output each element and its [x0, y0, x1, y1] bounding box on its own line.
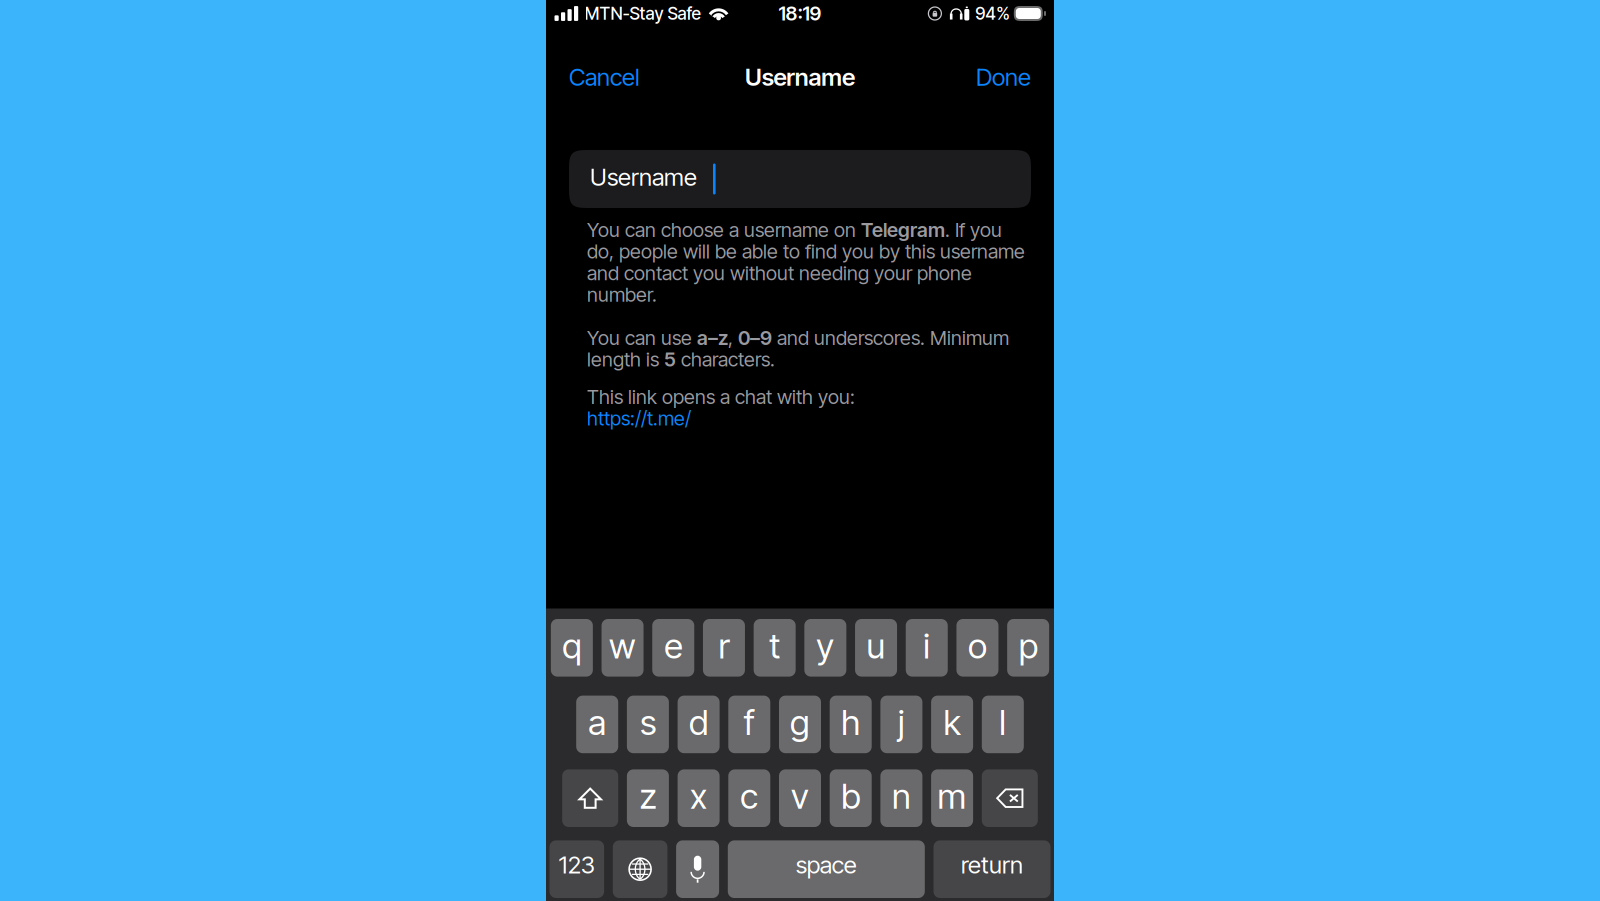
staticText: MTN-Stay Safe: [585, 3, 701, 24]
button[interactable]: https://t.me/: [587, 407, 1037, 429]
staticText: length is 5 characters.: [587, 348, 775, 371]
staticText: and contact you without needing your pho…: [587, 261, 972, 285]
button[interactable]: Cancel: [561, 50, 648, 103]
button[interactable]: z: [627, 769, 669, 827]
staticText: z: [639, 775, 656, 817]
button[interactable]: k: [931, 696, 973, 753]
button[interactable]: g: [779, 696, 821, 753]
staticText: l: [999, 701, 1006, 743]
button[interactable]: c: [728, 769, 770, 827]
button[interactable]: Done: [968, 50, 1039, 103]
button[interactable]: q: [551, 619, 593, 677]
staticText: You can use a–z, 0–9 and underscores. Mi…: [587, 326, 1009, 349]
staticText: f: [744, 701, 755, 743]
staticText: o: [968, 625, 987, 667]
button[interactable]: e: [652, 619, 694, 677]
staticText: k: [944, 701, 961, 743]
button[interactable]: v: [779, 769, 821, 827]
staticText: n: [892, 775, 911, 817]
button[interactable]: Next keyboard: [613, 840, 667, 898]
staticText: This link opens a chat with you:: [587, 385, 855, 409]
button[interactable]: h: [830, 696, 872, 753]
button[interactable]: space: [728, 840, 925, 898]
staticText: r: [718, 625, 729, 667]
button[interactable]: x: [678, 769, 720, 827]
staticText: c: [740, 775, 758, 817]
button[interactable]: t: [754, 619, 796, 677]
staticText: p: [1019, 625, 1038, 667]
staticText: d: [689, 701, 708, 743]
staticText: x: [690, 775, 707, 817]
staticText: q: [562, 625, 581, 667]
button[interactable]: Numbers: [549, 840, 604, 898]
staticText: b: [841, 775, 860, 817]
button[interactable]: Username: [569, 150, 1031, 208]
button[interactable]: u: [855, 619, 897, 677]
button[interactable]: s: [627, 696, 669, 753]
staticText: y: [816, 625, 834, 667]
staticText: Username: [590, 162, 697, 191]
staticText: g: [790, 701, 810, 743]
button[interactable]: m: [931, 769, 973, 827]
staticText: m: [938, 775, 967, 817]
button[interactable]: return: [933, 840, 1050, 898]
button[interactable]: j: [880, 696, 922, 753]
button[interactable]: r: [703, 619, 745, 677]
button[interactable]: w: [602, 619, 644, 677]
button[interactable]: b: [830, 769, 872, 827]
button[interactable]: l: [982, 696, 1024, 753]
staticText: 18:19: [778, 2, 821, 25]
staticText: Cancel: [569, 62, 640, 91]
staticText: s: [640, 701, 656, 743]
staticText: Username: [745, 62, 855, 91]
button[interactable]: i: [906, 619, 948, 677]
staticText: u: [866, 625, 885, 667]
button[interactable]: o: [956, 619, 998, 677]
button[interactable]: y: [804, 619, 846, 677]
staticText: space: [796, 850, 857, 879]
button[interactable]: d: [678, 696, 720, 753]
staticText: t: [769, 625, 780, 667]
button[interactable]: f: [728, 696, 770, 753]
staticText: You can choose a username on Telegram. I…: [587, 218, 1002, 241]
staticText: h: [841, 701, 860, 743]
staticText: 94%: [975, 3, 1010, 24]
staticText: 123: [559, 850, 595, 879]
button[interactable]: Delete: [982, 769, 1038, 827]
staticText: j: [898, 701, 905, 743]
button[interactable]: Shift: [562, 769, 618, 827]
button[interactable]: p: [1007, 619, 1049, 677]
staticText: number.: [587, 283, 657, 307]
staticText: i: [923, 625, 930, 667]
button[interactable]: n: [880, 769, 922, 827]
staticText: return: [961, 850, 1023, 879]
staticText: w: [609, 625, 636, 667]
staticText: v: [791, 775, 809, 817]
staticText: https://t.me/: [587, 406, 691, 430]
button[interactable]: Dictation: [676, 840, 719, 898]
staticText: a: [588, 701, 606, 743]
staticText: do, people will be able to find you by t…: [587, 239, 1025, 263]
button[interactable]: a: [576, 696, 618, 753]
staticText: Done: [976, 62, 1031, 91]
staticText: e: [664, 625, 682, 667]
